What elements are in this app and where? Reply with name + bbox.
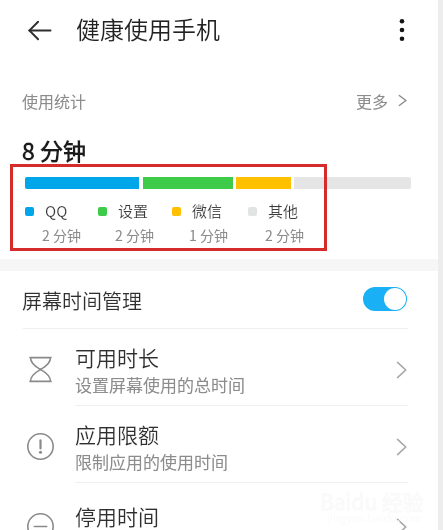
staticText: 1 分钟	[189, 225, 228, 245]
button[interactable]: 可用时长	[0, 331, 443, 408]
staticText: 停用时间	[75, 501, 159, 530]
staticText: 使用统计	[22, 89, 87, 112]
staticText: QQ	[45, 200, 68, 222]
button[interactable]: More options	[380, 8, 424, 52]
button[interactable]: Screen time management toggle	[363, 287, 407, 311]
button[interactable]	[0, 271, 443, 328]
button[interactable]: 使用统计	[0, 81, 443, 119]
staticText: jingyan.baidu.com	[327, 509, 423, 525]
staticText: 健康使用手机	[76, 11, 220, 46]
staticText: 更多	[356, 89, 389, 112]
staticText: 其他	[268, 200, 299, 222]
staticText: 应用限额	[75, 419, 159, 449]
button[interactable]: Back	[17, 8, 61, 52]
button[interactable]: 应用限额	[0, 408, 443, 485]
staticText: 2 分钟	[265, 225, 304, 245]
staticText: 2 分钟	[115, 225, 154, 245]
staticText: 8 分钟	[22, 133, 86, 166]
button[interactable]: 停用时间	[0, 477, 443, 530]
staticText: 2 分钟	[42, 225, 81, 245]
staticText: 屏幕时间管理	[22, 286, 142, 315]
staticText: 微信	[192, 200, 223, 222]
staticText: 设置屏幕使用的总时间	[75, 372, 245, 397]
staticText: 限制应用的使用时间	[75, 449, 228, 474]
staticText: 设置	[118, 200, 149, 222]
staticText: 可用时长	[75, 342, 159, 372]
